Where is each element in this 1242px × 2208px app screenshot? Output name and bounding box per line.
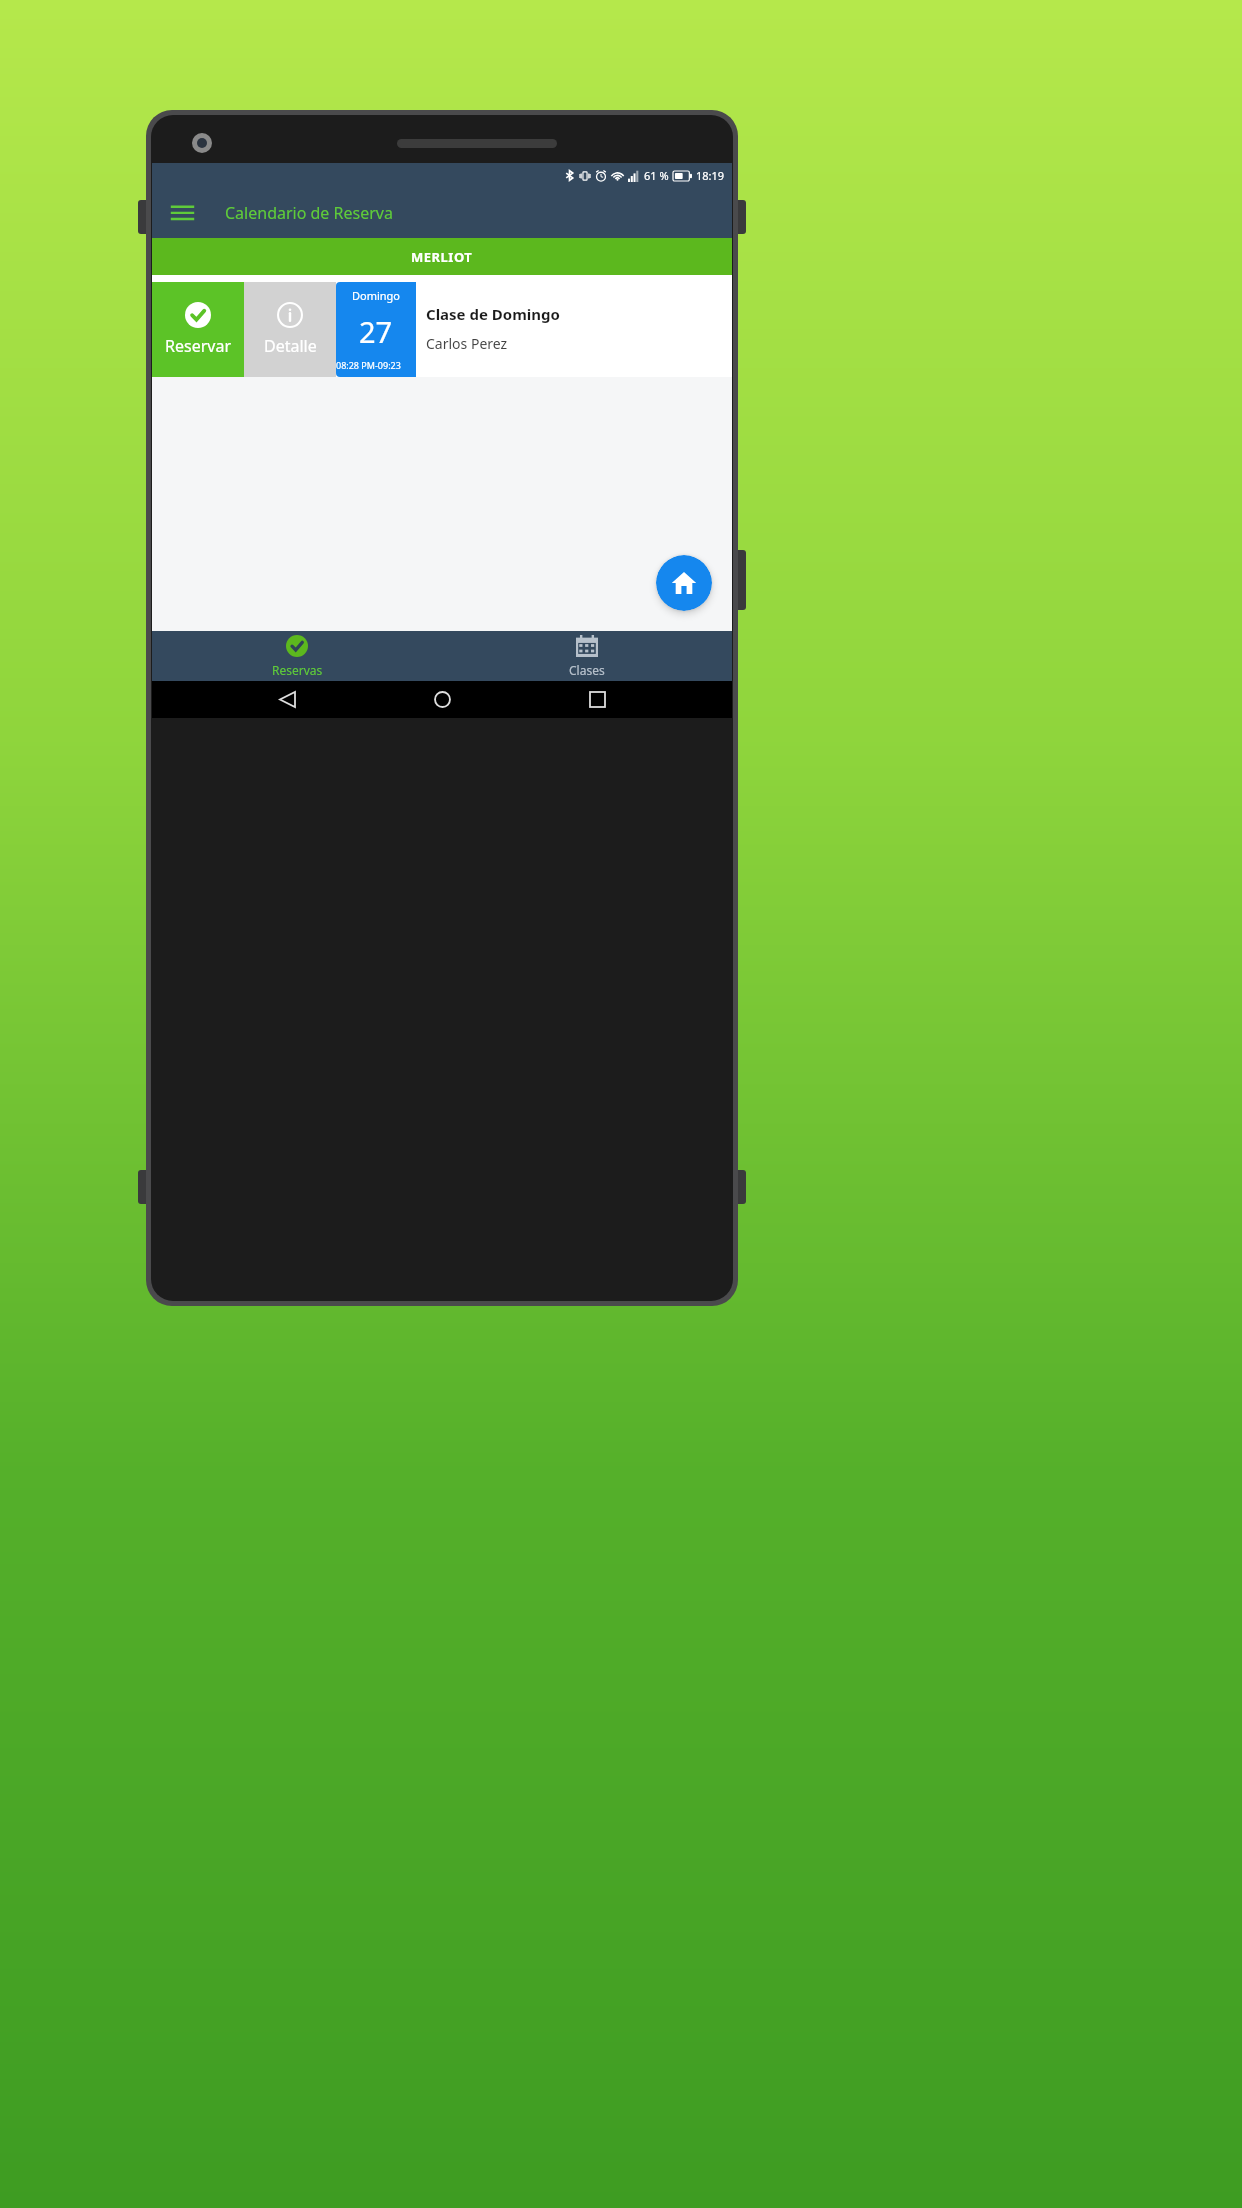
button[interactable]: Menú	[164, 195, 200, 231]
button[interactable]: Detalle	[244, 282, 336, 377]
staticText: 18:19	[696, 168, 725, 183]
button[interactable]: Reservar	[152, 282, 244, 377]
staticText: 27	[359, 312, 393, 351]
staticText: Detalle	[264, 335, 317, 357]
button[interactable]: Recientes	[577, 681, 617, 718]
staticText: MERLIOT	[411, 248, 473, 266]
button[interactable]: Inicio	[656, 555, 712, 611]
button[interactable]: Atrás	[267, 681, 307, 718]
staticText: 08:28 PM-09:23 PM	[336, 359, 416, 371]
button[interactable]: MERLIOT	[152, 238, 732, 275]
staticText: 61 %	[644, 168, 669, 183]
staticText: Calendario de Reserva	[225, 202, 393, 224]
staticText: Reservas	[272, 662, 323, 678]
staticText: Clase de Domingo	[426, 304, 560, 324]
staticText: Carlos Perez	[426, 334, 508, 353]
button[interactable]: Domingo	[336, 282, 732, 377]
staticText: Clases	[569, 662, 605, 678]
button[interactable]: Clases	[442, 631, 732, 681]
button[interactable]: Inicio	[422, 681, 462, 718]
staticText: Reservar	[165, 335, 231, 357]
staticText: Domingo	[352, 288, 401, 303]
button[interactable]: Reservas	[152, 631, 442, 681]
